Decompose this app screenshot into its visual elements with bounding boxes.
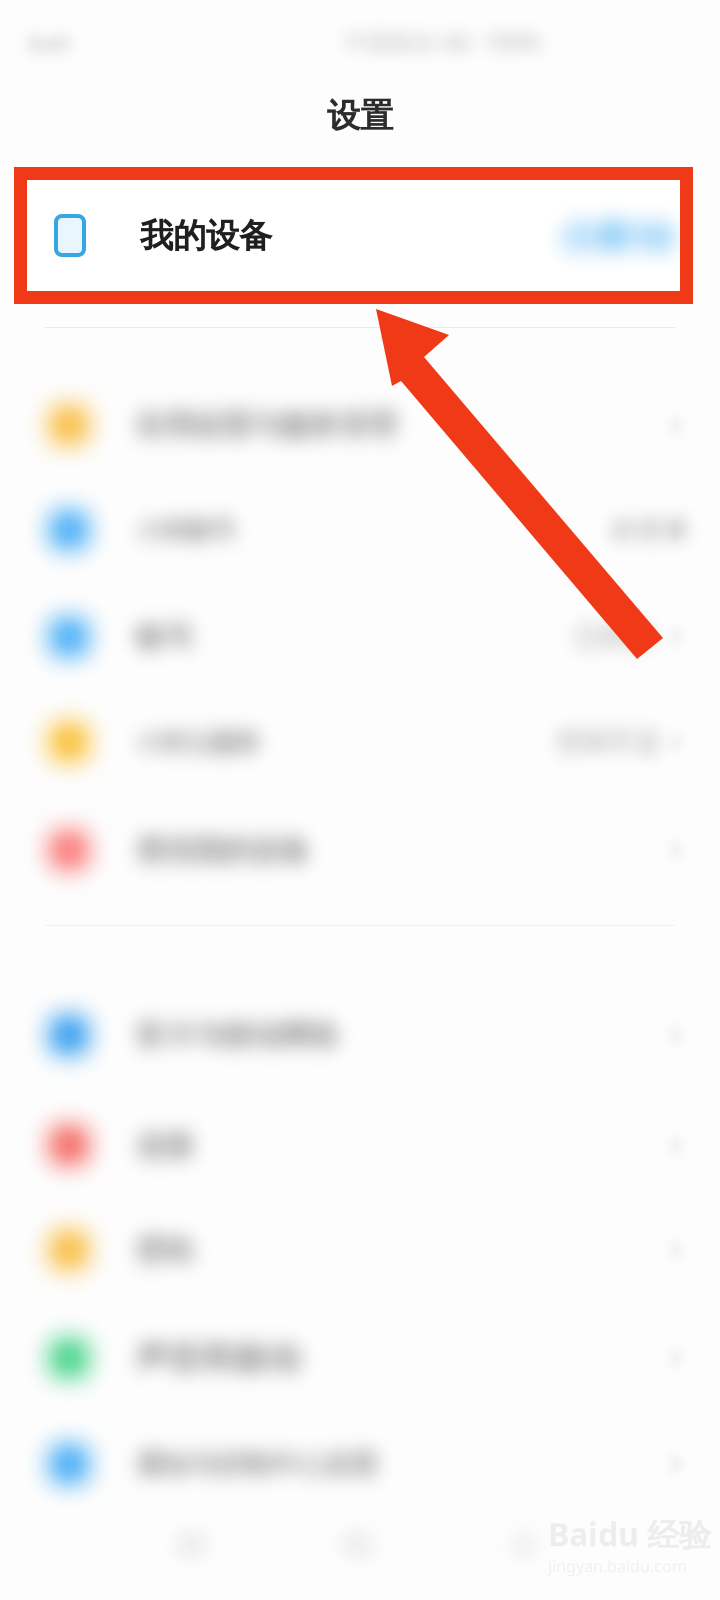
button[interactable]: 我的设备 bbox=[0, 0, 720, 1600]
staticText: Baidu 经验 bbox=[548, 1513, 711, 1555]
button[interactable]: 查找我的设备 bbox=[0, 0, 720, 1600]
button[interactable]: 连接 bbox=[0, 0, 720, 1600]
button[interactable]: 小米云服务 bbox=[0, 0, 720, 1600]
button[interactable]: 通知与控制中心设置 bbox=[0, 0, 720, 1600]
staticText: 设置 bbox=[327, 95, 393, 136]
staticText: jingyan.baidu.com bbox=[548, 1555, 687, 1577]
staticText: 我的设备 bbox=[140, 215, 272, 256]
button[interactable]: 账号 bbox=[0, 0, 720, 1600]
button[interactable]: 壁纸 bbox=[0, 0, 720, 1600]
button[interactable]: 应用设置与服务管理 bbox=[0, 0, 720, 1600]
button[interactable]: 小米账号 bbox=[0, 0, 720, 1600]
button[interactable]: 声音和振动 bbox=[0, 0, 720, 1600]
button[interactable]: 双卡与移动网络 bbox=[0, 0, 720, 1600]
